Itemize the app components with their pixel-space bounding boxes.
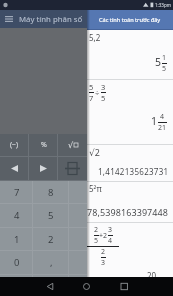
staticText: 2 (94, 225, 99, 235)
button[interactable] (0, 157, 29, 180)
button[interactable]: 7 (0, 181, 33, 203)
staticText: 5 (48, 209, 54, 222)
staticText: 1,4142135623731 (98, 166, 169, 177)
staticText: 1 (14, 233, 20, 246)
staticText: 7 (14, 186, 20, 199)
button[interactable] (57, 277, 115, 296)
staticText: 1 (151, 114, 158, 128)
staticText: % (41, 140, 47, 150)
staticText: 5 (94, 236, 99, 246)
button[interactable]: % (29, 134, 58, 156)
button[interactable]: 5,2 (87, 30, 173, 79)
staticText: 3 (108, 225, 113, 235)
staticText: Máy tính phân số (19, 14, 83, 25)
staticText: 21 (158, 123, 167, 133)
button[interactable]: Các tính toán trước đây (87, 10, 173, 30)
button[interactable]: 4 (0, 204, 33, 227)
button[interactable]: √ (58, 134, 87, 156)
staticText: 20 (147, 270, 157, 281)
button[interactable]: 5 (33, 204, 69, 227)
staticText: √2 (89, 146, 100, 158)
button[interactable] (29, 157, 58, 180)
staticText: 5 (155, 55, 162, 69)
staticText: 5 (162, 64, 167, 74)
button[interactable]: √2 (87, 145, 173, 181)
button[interactable]: 5 (87, 80, 173, 144)
button[interactable]: Máy tính phân số (0, 10, 87, 28)
button[interactable]: 1 (0, 228, 33, 250)
staticText: 5 (89, 82, 94, 92)
staticText: , (50, 256, 53, 269)
staticText: 2 (48, 233, 54, 246)
button[interactable]: 0 (0, 251, 33, 274)
button[interactable] (5, 16, 13, 22)
staticText: 2 (101, 247, 106, 257)
staticText: √ (68, 141, 74, 150)
button[interactable]: 2 (87, 223, 173, 277)
staticText: 78,5398163397448 (87, 206, 168, 218)
staticText: 4 (108, 236, 113, 246)
staticText: 5,2 (89, 32, 101, 43)
button[interactable] (0, 277, 57, 296)
staticText: 4 (160, 112, 165, 122)
button[interactable]: 8 (33, 181, 69, 203)
staticText: 0 (14, 256, 20, 269)
staticText: 1:33pm (155, 2, 171, 8)
staticText: 3 (101, 258, 106, 268)
staticText: 3 (101, 82, 106, 92)
staticText: 7 (89, 93, 94, 103)
staticText: 4 (14, 209, 20, 222)
button[interactable] (58, 157, 87, 180)
staticText: 5 (101, 93, 106, 103)
button[interactable] (115, 277, 173, 296)
staticText: 8 (48, 186, 54, 199)
staticText: (−) (10, 140, 19, 150)
staticText: +2 (99, 231, 108, 241)
staticText: 1 (162, 53, 167, 63)
staticText: 5²π (89, 183, 102, 194)
staticText: Các tính toán trước đây (99, 16, 161, 24)
button[interactable]: 2 (33, 228, 69, 250)
button[interactable]: 5²π (87, 182, 173, 222)
button[interactable]: (−) (0, 134, 29, 156)
staticText: ÷ (95, 88, 100, 98)
